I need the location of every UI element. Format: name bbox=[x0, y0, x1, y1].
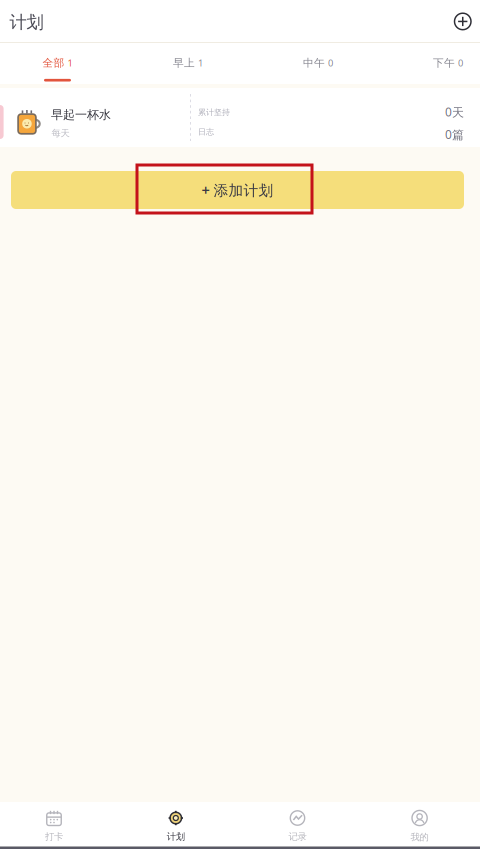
button[interactable]: 早上 bbox=[140, 43, 236, 84]
staticText: 0天 bbox=[445, 104, 464, 120]
staticText: 早上 bbox=[173, 56, 195, 69]
staticText: 我的 bbox=[411, 831, 429, 843]
staticText: 累计坚持 bbox=[198, 107, 230, 117]
button[interactable]: 早起一杯水 bbox=[0, 88, 480, 147]
button[interactable]: 打卡 bbox=[0, 809, 109, 843]
staticText: 早起一杯水 bbox=[51, 107, 111, 122]
staticText: 1 bbox=[198, 57, 203, 69]
button[interactable]: 记录 bbox=[242, 809, 352, 843]
button[interactable]: 我的 bbox=[365, 809, 475, 843]
button[interactable]: 全部 bbox=[9, 43, 105, 84]
staticText: 0 bbox=[328, 57, 333, 69]
staticText: 全部 bbox=[42, 56, 64, 69]
staticText: 记录 bbox=[288, 831, 306, 842]
button[interactable]: 中午 bbox=[270, 43, 366, 84]
staticText: 计划 bbox=[167, 831, 185, 842]
staticText: 计划 bbox=[9, 11, 43, 33]
staticText: 每天 bbox=[51, 127, 69, 139]
button[interactable]: 下午 bbox=[400, 43, 480, 84]
staticText: 1 bbox=[67, 57, 72, 69]
staticText: 0 bbox=[458, 57, 463, 69]
staticText: + 添加计划 bbox=[201, 180, 273, 200]
button[interactable]: 计划 bbox=[121, 809, 231, 843]
staticText: 下午 bbox=[433, 56, 455, 69]
staticText: 日志 bbox=[198, 127, 214, 137]
staticText: 中午 bbox=[303, 56, 325, 69]
staticText: 0篇 bbox=[445, 126, 464, 142]
button[interactable]: + 添加计划 bbox=[11, 171, 464, 209]
button[interactable]: Add plan bbox=[454, 13, 471, 30]
staticText: 打卡 bbox=[45, 831, 63, 842]
